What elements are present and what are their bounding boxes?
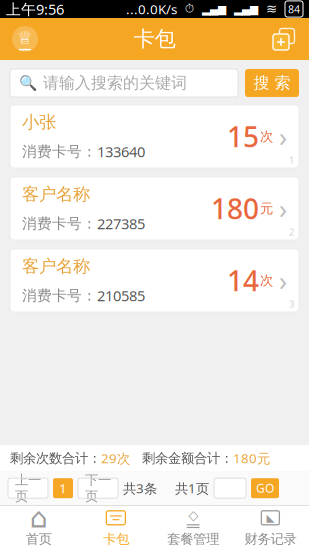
staticText: 下一页: [85, 472, 111, 505]
staticText: ...0.0K/s: [126, 0, 177, 18]
button[interactable]: ⌂: [0, 504, 77, 550]
button[interactable]: 会员: [0, 20, 40, 58]
staticText: 套餐管理: [167, 531, 219, 547]
staticText: 共1页: [175, 479, 209, 497]
staticText: 210585: [97, 286, 145, 305]
staticText: ♕: [17, 28, 33, 47]
staticText: 卡包: [103, 531, 129, 547]
staticText: 剩余次数合计：: [10, 450, 101, 466]
staticText: 1: [289, 154, 294, 166]
button[interactable]: ◣: [232, 504, 309, 550]
staticText: 3: [289, 298, 294, 310]
button[interactable]: 页码输入: [214, 478, 246, 498]
button[interactable]: 客户名称: [10, 177, 299, 240]
staticText: ≋: [266, 1, 277, 16]
staticText: ⏱: [185, 3, 194, 15]
staticText: ›: [279, 119, 287, 154]
staticText: ⌂: [30, 502, 48, 534]
staticText: 次: [260, 128, 273, 145]
staticText: 次: [260, 272, 273, 289]
staticText: 小张: [22, 112, 56, 133]
staticText: ◣: [266, 512, 274, 524]
staticText: 元: [260, 200, 273, 217]
staticText: ›: [279, 263, 287, 298]
staticText: 84: [288, 2, 300, 16]
button[interactable]: 卡包: [77, 504, 154, 550]
staticText: 剩余金额合计：: [142, 450, 233, 466]
staticText: 133640: [97, 142, 145, 161]
button[interactable]: 下一页: [78, 478, 118, 498]
staticText: 客户名称: [22, 256, 90, 277]
staticText: 消费卡号：: [22, 215, 97, 233]
staticText: 227385: [97, 214, 145, 233]
staticText: 卡包: [133, 26, 175, 52]
staticText: 180元: [233, 449, 270, 467]
staticText: 🔍: [19, 75, 37, 91]
staticText: GO: [256, 480, 274, 496]
staticText: 消费卡号：: [22, 287, 97, 305]
staticText: ▂▄▆: [234, 3, 258, 15]
staticText: 搜 索: [253, 73, 290, 93]
staticText: 请输入搜索的关键词: [43, 73, 187, 93]
staticText: 14: [227, 262, 259, 299]
staticText: 1: [59, 479, 67, 497]
staticText: ›: [279, 191, 287, 226]
button[interactable]: 上一页: [8, 478, 48, 498]
staticText: ▂▄▆: [202, 3, 226, 15]
staticText: 上一页: [15, 472, 41, 505]
button[interactable]: 小张: [10, 105, 299, 168]
staticText: 2: [289, 226, 294, 238]
staticText: 财务记录: [244, 531, 296, 547]
button[interactable]: 搜 索: [245, 69, 299, 97]
button[interactable]: ◇: [154, 504, 232, 550]
staticText: 180: [211, 190, 259, 227]
button[interactable]: 1: [53, 478, 73, 498]
button[interactable]: 添加卡包: [271, 21, 309, 57]
staticText: 首页: [26, 531, 52, 547]
staticText: 消费卡号：: [22, 143, 97, 161]
staticText: 共3条: [123, 479, 157, 497]
staticText: ◇: [188, 507, 198, 523]
button[interactable]: GO: [251, 478, 279, 498]
staticText: 15: [227, 118, 259, 155]
staticText: 上午9:56: [6, 0, 64, 19]
staticText: 29次: [101, 449, 130, 467]
button[interactable]: 客户名称: [10, 249, 299, 312]
staticText: 客户名称: [22, 184, 90, 205]
